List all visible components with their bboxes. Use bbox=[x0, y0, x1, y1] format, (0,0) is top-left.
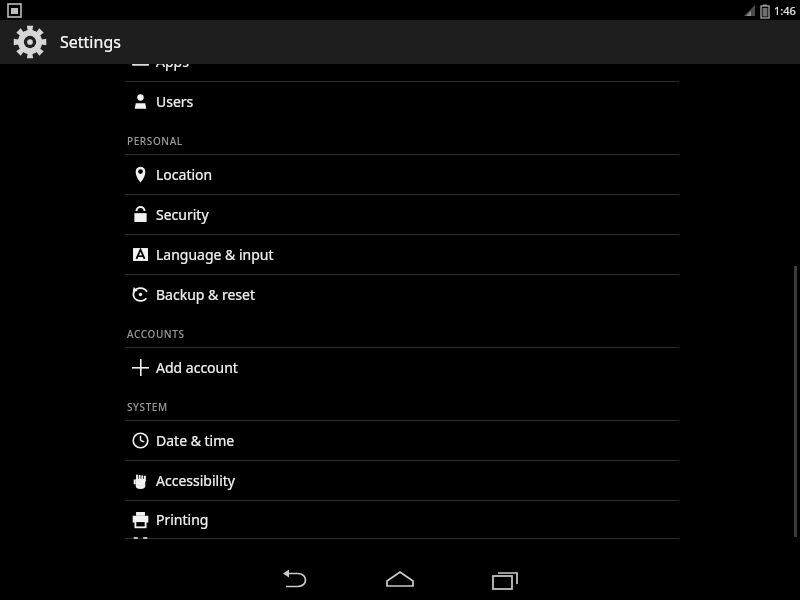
staticText: 1:46 bbox=[774, 3, 796, 18]
button[interactable]: Backup & reset bbox=[0, 275, 800, 314]
button[interactable]: Language & input bbox=[0, 235, 800, 274]
button[interactable]: Printing bbox=[0, 501, 800, 538]
button[interactable]: Back bbox=[271, 560, 321, 600]
button[interactable]: Settings icon bbox=[0, 20, 800, 64]
button[interactable]: Add account bbox=[0, 348, 800, 387]
staticText: Add account bbox=[156, 358, 238, 377]
staticText: Apps bbox=[156, 64, 189, 71]
staticText: Security bbox=[156, 205, 209, 224]
staticText: PERSONAL bbox=[127, 134, 183, 148]
staticText: Settings bbox=[60, 31, 121, 53]
staticText: ACCOUNTS bbox=[127, 327, 185, 341]
button[interactable]: Accessibility bbox=[0, 461, 800, 500]
staticText: Date & time bbox=[156, 431, 235, 450]
other: Settings icon bbox=[12, 24, 48, 60]
staticText: Language & input bbox=[156, 245, 274, 264]
button[interactable]: Recent apps bbox=[480, 560, 530, 600]
button[interactable]: Security bbox=[0, 195, 800, 234]
button[interactable]: Users bbox=[0, 82, 800, 121]
staticText: Location bbox=[156, 165, 213, 184]
button[interactable]: Date & time bbox=[0, 421, 800, 460]
staticText: Accessibility bbox=[156, 471, 235, 490]
button[interactable]: Apps bbox=[0, 64, 800, 81]
staticText: Printing bbox=[156, 510, 209, 529]
staticText: Users bbox=[156, 92, 194, 111]
button[interactable]: Location bbox=[0, 155, 800, 194]
staticText: SYSTEM bbox=[127, 400, 168, 414]
staticText: Backup & reset bbox=[156, 285, 255, 304]
button[interactable]: Home bbox=[375, 560, 425, 600]
